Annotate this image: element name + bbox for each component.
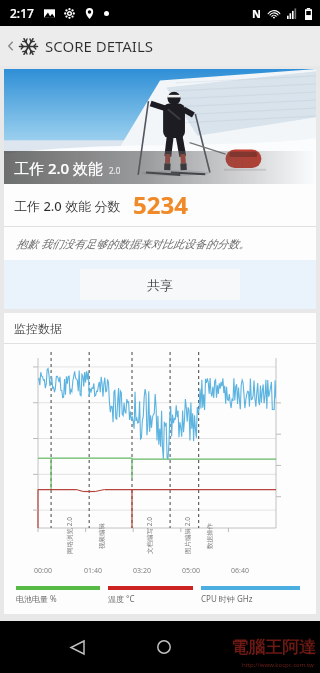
staticText: 電腦王阿達	[231, 637, 316, 658]
button[interactable]: Back	[0, 26, 320, 66]
staticText: 监控数据	[14, 321, 62, 336]
staticText: 图片编辑 2.0	[183, 517, 192, 554]
staticText: 工作 2.0 效能	[14, 158, 104, 178]
staticText: N	[252, 6, 261, 21]
staticText: 数据操作	[206, 523, 214, 549]
staticText: 网络浏览 2.0	[65, 517, 74, 554]
staticText: 05:00	[182, 566, 200, 576]
other: Back	[4, 39, 18, 53]
staticText: 03:20	[133, 566, 151, 576]
button[interactable]: Home	[149, 632, 179, 662]
staticText: 01:40	[84, 566, 102, 576]
staticText: 文档编写 2.0	[145, 517, 154, 554]
staticText: 2:17	[10, 5, 34, 21]
staticText: 电池电量 %	[16, 593, 57, 604]
staticText: 工作 2.0 效能 分数	[14, 197, 121, 215]
staticText: 温度 °C	[108, 593, 135, 604]
button[interactable]: 共享	[80, 269, 240, 300]
staticText: 5234	[133, 188, 188, 221]
staticText: CPU 时钟 GHz	[201, 593, 253, 604]
staticText: 共享	[147, 277, 173, 293]
staticText: 00:00	[34, 566, 52, 576]
staticText: SCORE DETAILS	[45, 36, 154, 56]
staticText: 抱歉 我们没有足够的数据来对比此设备的分数。	[16, 236, 250, 251]
staticText: 视频编辑	[98, 523, 106, 549]
staticText: http://www.kocpc.com.tw	[242, 661, 314, 669]
staticText: 2.0	[109, 165, 121, 176]
staticText: 06:40	[231, 566, 249, 576]
button[interactable]: Back	[62, 632, 92, 662]
